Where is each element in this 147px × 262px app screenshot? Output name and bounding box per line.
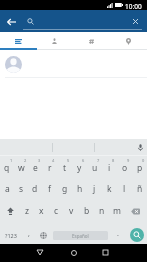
staticText: n: [99, 205, 105, 217]
button[interactable]: Voice input: [133, 139, 147, 156]
staticText: 2: [24, 158, 27, 163]
staticText: y: [77, 162, 82, 174]
staticText: p: [137, 162, 143, 174]
button[interactable]: t: [57, 156, 72, 178]
button[interactable]: Period: [110, 222, 125, 244]
staticText: .: [117, 229, 119, 239]
button[interactable]: ñ: [132, 178, 147, 200]
staticText: v: [69, 205, 74, 217]
button[interactable]: y: [72, 156, 87, 178]
button[interactable]: Search: [130, 228, 144, 242]
staticText: m: [113, 205, 121, 217]
staticText: l: [123, 183, 126, 195]
button[interactable]: r: [42, 156, 57, 178]
button[interactable]: f: [42, 178, 57, 200]
staticText: 1: [10, 158, 13, 163]
button[interactable]: g: [57, 178, 72, 200]
button[interactable]: Close search: [128, 14, 142, 28]
button[interactable]: [0, 50, 147, 78]
button[interactable]: m: [109, 200, 124, 222]
button[interactable]: Home: [65, 244, 82, 261]
staticText: a: [5, 183, 10, 195]
staticText: ñ: [137, 183, 143, 195]
staticText: i: [108, 162, 111, 174]
button[interactable]: u: [87, 156, 102, 178]
button[interactable]: v: [64, 200, 79, 222]
button[interactable]: b: [79, 200, 94, 222]
button[interactable]: Topics: [73, 32, 110, 50]
staticText: 3: [38, 158, 41, 163]
button[interactable]: Emoji: [36, 222, 51, 244]
button[interactable]: Backspace: [124, 200, 147, 222]
staticText: 5: [67, 158, 70, 163]
staticText: x: [39, 205, 44, 217]
button[interactable]: Symbols: [0, 222, 21, 244]
staticText: z: [25, 205, 29, 217]
staticText: Español: [72, 233, 89, 239]
staticText: u: [92, 162, 98, 174]
button[interactable]: l: [117, 178, 132, 200]
staticText: ?123: [5, 232, 17, 239]
staticText: 10:00: [125, 2, 142, 11]
staticText: e: [33, 162, 38, 174]
staticText: 6: [82, 158, 85, 163]
staticText: q: [4, 162, 10, 174]
staticText: 0: [142, 158, 145, 163]
button[interactable]: k: [102, 178, 117, 200]
staticText: t: [63, 162, 67, 174]
button[interactable]: d: [28, 178, 42, 200]
staticText: ,: [28, 229, 30, 239]
button[interactable]: e: [28, 156, 42, 178]
staticText: 7: [97, 158, 100, 163]
staticText: w: [18, 162, 25, 174]
staticText: 9: [127, 158, 130, 163]
button[interactable]: z: [20, 200, 34, 222]
button[interactable]: x: [34, 200, 49, 222]
button[interactable]: j: [87, 178, 102, 200]
button[interactable]: i: [102, 156, 117, 178]
button[interactable]: o: [117, 156, 132, 178]
staticText: h: [77, 183, 83, 195]
staticText: r: [48, 162, 52, 174]
button[interactable]: Recent apps: [97, 244, 114, 261]
button[interactable]: Back: [31, 244, 48, 261]
button[interactable]: Back: [4, 14, 19, 29]
staticText: o: [122, 162, 128, 174]
button[interactable]: q: [0, 156, 14, 178]
button[interactable]: List: [0, 32, 36, 50]
button[interactable]: Comma: [21, 222, 36, 244]
button[interactable]: Español: [53, 231, 108, 240]
button[interactable]: a: [0, 178, 14, 200]
button[interactable]: w: [14, 156, 28, 178]
staticText: f: [48, 183, 51, 195]
button[interactable]: Contacts: [36, 32, 73, 50]
button[interactable]: Places: [110, 32, 147, 50]
staticText: c: [54, 205, 59, 217]
staticText: k: [107, 183, 112, 195]
staticText: j: [93, 183, 96, 195]
staticText: 4: [52, 158, 55, 163]
button[interactable]: Shift: [0, 200, 20, 222]
button[interactable]: p: [132, 156, 147, 178]
staticText: b: [84, 205, 90, 217]
button[interactable]: c: [49, 200, 64, 222]
staticText: s: [19, 183, 24, 195]
button[interactable]: h: [72, 178, 87, 200]
staticText: d: [32, 183, 38, 195]
staticText: g: [62, 183, 68, 195]
button[interactable]: n: [94, 200, 109, 222]
staticText: 8: [112, 158, 115, 163]
button[interactable]: s: [14, 178, 28, 200]
